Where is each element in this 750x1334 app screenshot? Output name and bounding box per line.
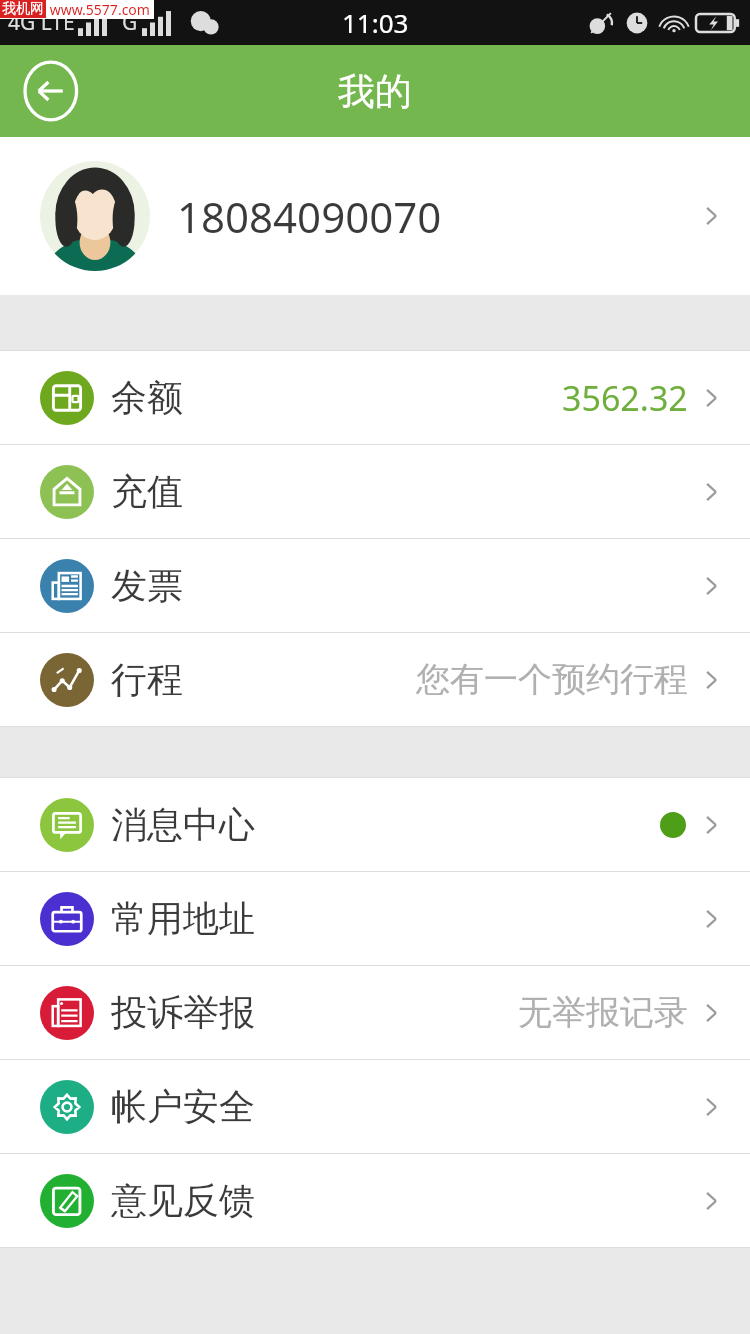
button[interactable]: 投诉举报 — [0, 966, 750, 1059]
button[interactable]: 意见反馈 — [0, 1154, 750, 1247]
staticText: 充值 — [111, 469, 183, 514]
staticText: 3562.32 — [562, 375, 688, 421]
staticText: 我机网 — [2, 0, 44, 18]
staticText: 11:03 — [342, 5, 409, 40]
button[interactable]: 18084090070 — [0, 137, 750, 295]
button[interactable]: Back — [22, 61, 82, 121]
staticText: 4G LTE — [8, 8, 75, 37]
button[interactable]: 发票 — [0, 539, 750, 632]
staticText: 消息中心 — [111, 802, 255, 847]
staticText: 发票 — [111, 563, 183, 608]
button[interactable]: 行程 — [0, 633, 750, 726]
staticText: 意见反馈 — [111, 1178, 255, 1223]
button[interactable]: 余额 — [0, 351, 750, 444]
button[interactable]: 消息中心 — [0, 778, 750, 871]
button[interactable]: 充值 — [0, 445, 750, 538]
staticText: 投诉举报 — [111, 990, 255, 1035]
staticText: 无举报记录 — [518, 991, 688, 1034]
staticText: 您有一个预约行程 — [416, 658, 688, 701]
staticText: 我的 — [338, 68, 412, 115]
staticText: 余额 — [111, 375, 183, 420]
staticText: 常用地址 — [111, 896, 255, 941]
button[interactable]: 帐户安全 — [0, 1060, 750, 1153]
staticText: 帐户安全 — [111, 1084, 255, 1129]
staticText: 行程 — [111, 657, 183, 702]
staticText: www.5577.com — [46, 0, 154, 19]
staticText: 18084090070 — [177, 188, 442, 245]
button[interactable]: 常用地址 — [0, 872, 750, 965]
staticText: G — [122, 8, 138, 37]
